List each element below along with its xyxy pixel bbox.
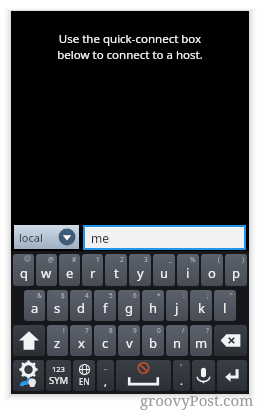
button[interactable]: 0 <box>142 325 164 356</box>
staticText: l <box>223 299 227 317</box>
staticText: : <box>183 291 185 300</box>
staticText: 123 <box>52 364 65 374</box>
button[interactable]: Voice input <box>192 360 215 391</box>
staticText: ( <box>218 255 220 264</box>
staticText: w <box>41 264 52 282</box>
button[interactable]: 4 <box>70 290 92 321</box>
staticText: / <box>182 326 185 335</box>
staticText: s <box>54 299 61 317</box>
button[interactable]: $ <box>47 290 68 321</box>
button[interactable]: / <box>166 325 188 356</box>
button[interactable]: ☺ <box>13 254 34 286</box>
staticText: Use the quick-connect box below to conne… <box>57 31 203 62</box>
button[interactable]: Keyboard settings <box>13 360 44 391</box>
button[interactable]: 9 <box>118 325 140 356</box>
staticText: local <box>19 230 43 245</box>
button[interactable]: 2 <box>105 254 127 286</box>
staticText: h <box>149 299 158 317</box>
staticText: d <box>77 299 85 317</box>
button[interactable]: ' <box>173 360 190 391</box>
button[interactable]: ? <box>190 325 212 356</box>
staticText: q <box>20 264 28 282</box>
staticText: ' <box>180 361 183 373</box>
button[interactable]: * <box>142 290 164 321</box>
button[interactable]: Enter <box>217 360 247 391</box>
button[interactable]: 3 <box>129 254 151 286</box>
staticText: groovyPost.com <box>140 390 254 410</box>
staticText: b <box>149 334 157 352</box>
staticText: _ <box>169 255 172 264</box>
staticText: t <box>114 264 119 282</box>
staticText: 9 <box>133 326 137 335</box>
button[interactable]: Delete <box>214 325 247 356</box>
staticText: y <box>137 264 144 282</box>
staticText: f <box>103 299 108 317</box>
button[interactable]: Change language <box>73 360 95 391</box>
button[interactable]: local <box>14 225 79 249</box>
staticText: 7 <box>85 326 89 335</box>
button[interactable]: 123 <box>46 360 71 391</box>
staticText: ; <box>207 291 209 300</box>
button[interactable]: ! <box>47 325 68 356</box>
button[interactable]: 8 <box>94 325 116 356</box>
staticText: @ <box>48 255 54 264</box>
button[interactable]: - <box>97 360 114 391</box>
staticText: & <box>37 291 42 300</box>
staticText: 4 <box>85 291 89 300</box>
staticText: * <box>157 291 161 300</box>
button[interactable]: 5 <box>94 290 116 321</box>
button[interactable]: 6 <box>118 290 140 321</box>
staticText: x <box>78 334 85 352</box>
staticText: " <box>230 291 233 300</box>
staticText: c <box>102 334 109 352</box>
staticText: k <box>198 299 205 317</box>
staticText: 2 <box>120 255 124 264</box>
staticText: 1 <box>96 255 100 264</box>
button[interactable]: me <box>85 227 244 248</box>
button[interactable]: ; <box>190 290 212 321</box>
staticText: $ <box>61 291 65 300</box>
staticText: ! <box>63 326 65 335</box>
staticText: ) <box>242 255 244 264</box>
staticText: . <box>180 373 183 388</box>
staticText: 0 <box>157 326 161 335</box>
staticText: EN <box>79 376 90 387</box>
staticText: 8 <box>109 326 113 335</box>
staticText: p <box>232 264 240 282</box>
staticText: r <box>90 264 96 282</box>
staticText: n <box>173 334 182 352</box>
staticText: v <box>126 334 133 352</box>
staticText: - <box>104 362 107 374</box>
staticText: 5 <box>109 291 113 300</box>
staticText: o <box>208 264 216 282</box>
staticText: ? <box>206 326 209 335</box>
button[interactable]: ( <box>201 254 223 286</box>
staticText: % <box>190 255 196 264</box>
button[interactable]: 7 <box>70 325 92 356</box>
staticText: m <box>195 334 208 352</box>
button[interactable]: & <box>24 290 45 321</box>
button[interactable]: 1 <box>82 254 103 286</box>
staticText: g <box>125 299 133 317</box>
button[interactable]: # <box>59 254 80 286</box>
staticText: # <box>72 255 77 264</box>
button[interactable]: Space <box>116 360 171 391</box>
button[interactable]: @ <box>36 254 57 286</box>
staticText: u <box>160 264 169 282</box>
button[interactable]: % <box>177 254 199 286</box>
staticText: me <box>91 230 109 246</box>
button[interactable]: ) <box>225 254 247 286</box>
staticText: , <box>104 374 107 389</box>
button[interactable]: Shift <box>13 325 45 356</box>
button[interactable]: : <box>166 290 188 321</box>
button[interactable]: _ <box>153 254 175 286</box>
staticText: j <box>175 299 179 317</box>
staticText: i <box>186 264 190 282</box>
staticText: 6 <box>133 291 137 300</box>
staticText: z <box>54 334 61 352</box>
staticText: e <box>66 264 74 282</box>
button[interactable]: " <box>214 290 236 321</box>
staticText: 3 <box>144 255 148 264</box>
staticText: ☺ <box>24 255 31 263</box>
staticText: a <box>31 299 39 317</box>
